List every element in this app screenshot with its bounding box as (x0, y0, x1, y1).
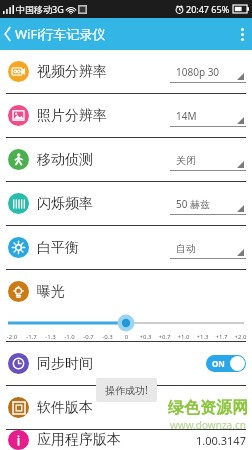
staticText: -1.0 (60, 333, 79, 341)
button[interactable]: 应用程序版本 (0, 430, 252, 450)
staticText: +0.3 (136, 333, 155, 341)
button[interactable]: 白平衡 (0, 226, 252, 269)
staticText: +0.7 (155, 333, 174, 341)
button[interactable]: Back (0, 23, 14, 45)
button[interactable]: 闪烁频率 (0, 182, 252, 225)
staticText: www.downza.cn (170, 418, 246, 432)
staticText: ON (212, 358, 225, 369)
button[interactable]: 同步时间 (0, 342, 252, 385)
staticText: 0 (117, 333, 136, 341)
staticText: +2.0 (231, 333, 250, 341)
staticText: -1.7 (22, 333, 41, 341)
button[interactable]: Exposure slider (8, 313, 244, 333)
button[interactable]: 移动侦测 (0, 138, 252, 181)
staticText: 1.00.3147 (196, 433, 246, 448)
button[interactable]: 视频分辨率 (0, 50, 252, 93)
staticText: 绿色资源网 (168, 398, 248, 418)
staticText: 照片分辨率 (37, 107, 107, 125)
button[interactable]: 关闭 (170, 149, 246, 171)
staticText: 闪烁频率 (37, 195, 93, 213)
staticText: 关闭 (176, 154, 196, 167)
staticText: 视频分辨率 (37, 63, 107, 81)
staticText: 1080p 30 (176, 65, 220, 79)
staticText: +1.3 (193, 333, 212, 341)
staticText: 移动侦测 (37, 151, 93, 169)
staticText: 白平衡 (37, 239, 79, 257)
staticText: 曝光 (37, 283, 65, 301)
staticText: +1.7 (212, 333, 231, 341)
staticText: -0.3 (98, 333, 117, 341)
staticText: 50 赫兹 (176, 197, 211, 211)
button[interactable]: 50 赫兹 (170, 193, 246, 215)
staticText: 自动 (176, 242, 196, 255)
staticText: WiFi行车记录仪 (15, 25, 106, 43)
staticText: -0.7 (79, 333, 98, 341)
button[interactable]: More options (233, 22, 252, 47)
staticText: +1.0 (174, 333, 193, 341)
staticText: 同步时间 (37, 355, 93, 373)
staticText: 中国移动3G (16, 3, 64, 15)
button[interactable]: 曝光 (0, 270, 252, 313)
button[interactable]: 软件版本 (0, 386, 252, 429)
staticText: 20:47 65% (186, 3, 230, 15)
staticText: 操作成功! (105, 383, 148, 397)
staticText: 14M (176, 109, 197, 123)
button[interactable]: Sync time toggle, on (206, 355, 246, 372)
button[interactable]: 自动 (170, 237, 246, 259)
button[interactable]: 1080p 30 (170, 61, 246, 83)
staticText: 应用程序版本 (37, 431, 121, 449)
staticText: 软件版本 (37, 399, 93, 417)
button[interactable]: 照片分辨率 (0, 94, 252, 137)
staticText: -1.3 (41, 333, 60, 341)
button[interactable]: 14M (170, 105, 246, 127)
staticText: -2.0 (2, 333, 22, 341)
